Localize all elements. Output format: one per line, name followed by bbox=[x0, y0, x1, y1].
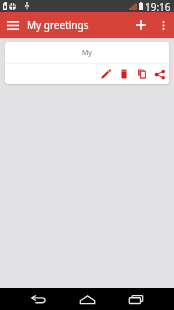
button[interactable]: Home bbox=[76, 288, 98, 310]
button[interactable]: Add bbox=[129, 12, 152, 38]
button[interactable]: Back bbox=[27, 288, 49, 310]
button[interactable]: More options bbox=[152, 12, 174, 38]
staticText: 19:16 bbox=[145, 0, 171, 12]
staticText: My greetings bbox=[27, 18, 89, 32]
button[interactable]: Copy bbox=[133, 64, 151, 84]
staticText: My bbox=[82, 48, 92, 58]
button[interactable]: Edit bbox=[97, 64, 115, 84]
button[interactable]: Delete bbox=[115, 64, 133, 84]
button[interactable]: Open navigation drawer bbox=[0, 12, 26, 38]
button[interactable]: My bbox=[5, 42, 169, 84]
button[interactable]: Share bbox=[151, 64, 169, 84]
button[interactable]: Recent apps bbox=[125, 288, 147, 310]
